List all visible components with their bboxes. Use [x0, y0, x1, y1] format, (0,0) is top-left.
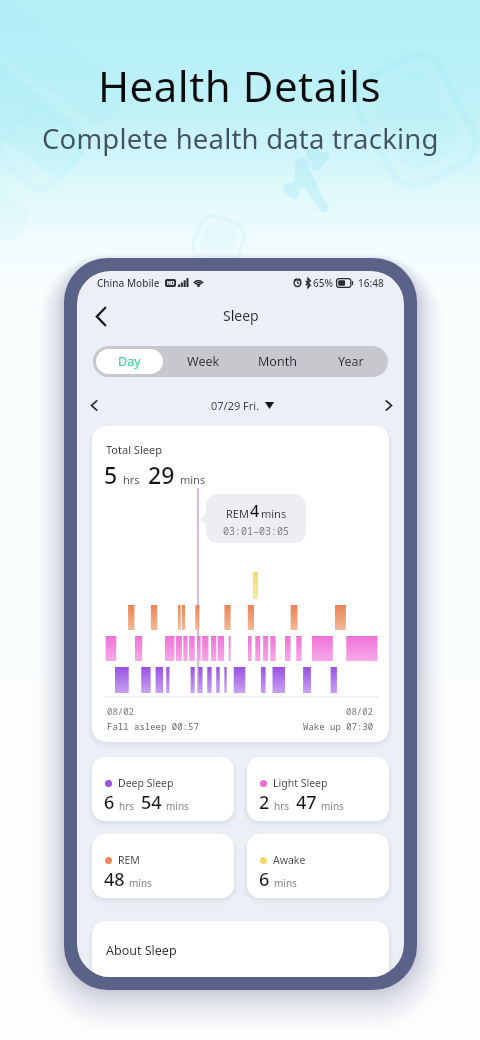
staticText: Complete health data tracking: [42, 120, 439, 157]
staticText: 6: [259, 867, 270, 892]
staticText: 03:01–03:05: [223, 524, 289, 538]
staticText: hrs: [119, 799, 135, 813]
button[interactable]: Previous day: [83, 395, 105, 416]
staticText: 08/02: [346, 705, 374, 717]
staticText: China Mobile: [97, 276, 160, 290]
staticText: Total Sleep: [106, 442, 162, 457]
staticText: hrs: [274, 799, 290, 813]
staticText: Day: [118, 353, 141, 370]
staticText: 47: [296, 790, 317, 815]
staticText: REM: [118, 853, 140, 867]
staticText: Week: [187, 353, 220, 370]
button[interactable]: Awake: [247, 834, 389, 898]
staticText: 07/29 Fri.: [211, 398, 260, 413]
button[interactable]: 07/29 Fri.: [211, 398, 274, 413]
staticText: 54: [141, 790, 162, 815]
button[interactable]: Month: [243, 349, 311, 374]
staticText: 5: [104, 459, 118, 490]
staticText: 6: [104, 790, 115, 815]
staticText: About Sleep: [106, 942, 177, 959]
staticText: mins: [180, 472, 206, 487]
staticText: Light Sleep: [273, 776, 328, 790]
staticText: 2: [259, 790, 270, 815]
button[interactable]: REM: [92, 834, 234, 898]
staticText: 48: [104, 867, 125, 892]
button[interactable]: Week: [169, 349, 237, 374]
button[interactable]: Back: [83, 298, 119, 334]
staticText: 29: [148, 459, 175, 490]
staticText: Fall asleep 00:57: [107, 720, 199, 732]
staticText: mins: [274, 876, 297, 890]
staticText: REM: [226, 506, 249, 521]
staticText: Sleep: [223, 306, 259, 325]
staticText: 65%: [313, 276, 333, 290]
button[interactable]: Next day: [378, 395, 400, 416]
staticText: Deep Sleep: [118, 776, 174, 790]
staticText: HD: [167, 280, 175, 287]
staticText: Health Details: [98, 57, 382, 114]
staticText: 4: [250, 500, 260, 522]
staticText: 16:48: [358, 276, 384, 290]
staticText: mins: [261, 506, 287, 521]
button[interactable]: About Sleep: [92, 921, 389, 977]
button[interactable]: Deep Sleep: [92, 757, 234, 821]
staticText: Month: [258, 353, 297, 370]
staticText: mins: [166, 799, 189, 813]
staticText: Wake up 07:30: [303, 720, 374, 732]
staticText: Awake: [273, 853, 306, 867]
button[interactable]: Day: [96, 349, 163, 374]
button[interactable]: Light Sleep: [247, 757, 389, 821]
staticText: hrs: [123, 472, 140, 487]
staticText: mins: [129, 876, 152, 890]
staticText: Year: [338, 353, 364, 370]
staticText: mins: [321, 799, 344, 813]
staticText: 08/02: [107, 705, 135, 717]
button[interactable]: Year: [317, 349, 385, 374]
